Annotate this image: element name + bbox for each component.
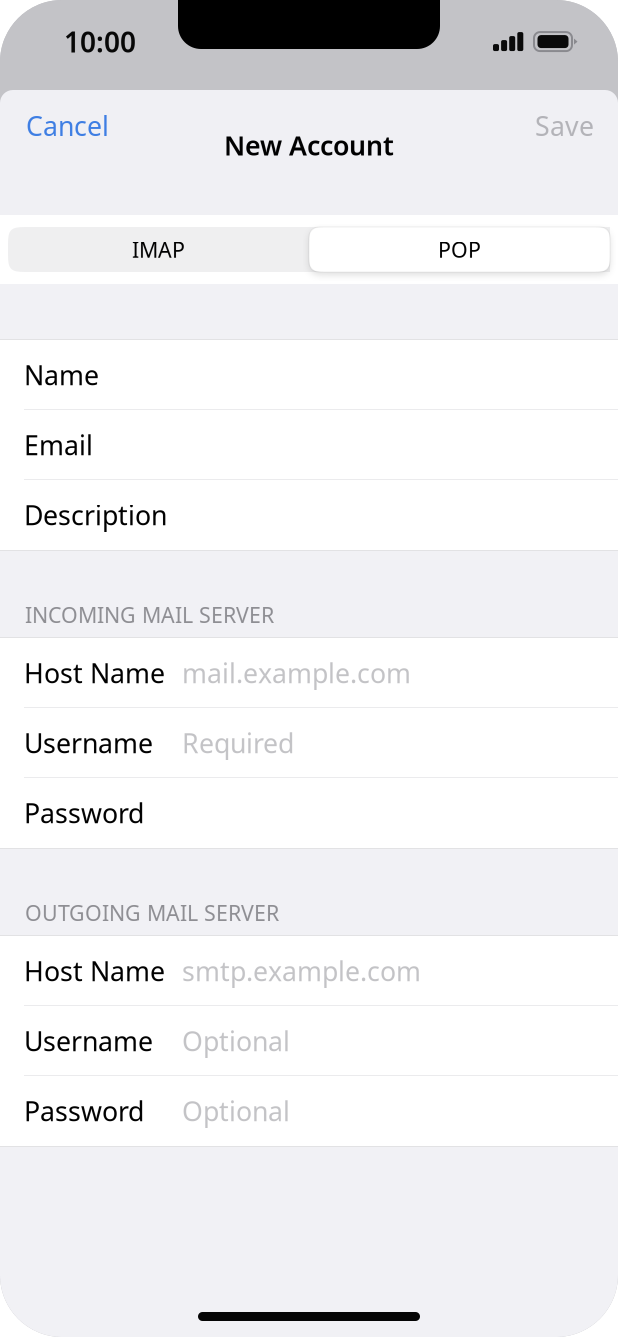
button[interactable]: Username <box>0 1006 618 1076</box>
button[interactable]: Password <box>0 778 618 848</box>
button[interactable]: Save <box>519 100 618 151</box>
staticText: Description <box>24 497 167 533</box>
staticText: Cancel <box>26 108 109 143</box>
staticText: 10:00 <box>64 23 136 60</box>
staticText: Optional <box>182 1023 290 1059</box>
staticText: OUTGOING MAIL SERVER <box>25 899 279 927</box>
staticText: Host Name <box>24 953 165 989</box>
staticText: Optional <box>182 1093 290 1129</box>
staticText: IMAP <box>132 235 185 264</box>
staticText: Username <box>24 1023 153 1059</box>
staticText: Email <box>24 427 93 463</box>
staticText: Save <box>535 108 594 143</box>
staticText: Host Name <box>24 655 165 691</box>
button[interactable]: Username <box>0 708 618 778</box>
staticText: Required <box>182 725 294 761</box>
staticText: INCOMING MAIL SERVER <box>25 601 274 629</box>
staticText: Username <box>24 725 153 761</box>
button[interactable]: Host Name <box>0 936 618 1006</box>
button[interactable]: POP <box>309 227 610 272</box>
button[interactable]: IMAP <box>8 227 309 272</box>
button[interactable]: Password <box>0 1076 618 1146</box>
staticText: Password <box>24 795 144 831</box>
staticText: New Account <box>224 127 394 163</box>
staticText: mail.example.com <box>182 655 411 691</box>
staticText: Password <box>24 1093 144 1129</box>
button[interactable]: Host Name <box>0 638 618 708</box>
staticText: POP <box>438 235 481 264</box>
button[interactable]: Name <box>0 340 618 410</box>
button[interactable]: Description <box>0 480 618 550</box>
staticText: Name <box>24 357 99 393</box>
staticText: smtp.example.com <box>182 953 421 989</box>
button[interactable]: Cancel <box>0 100 125 151</box>
button[interactable]: Email <box>0 410 618 480</box>
